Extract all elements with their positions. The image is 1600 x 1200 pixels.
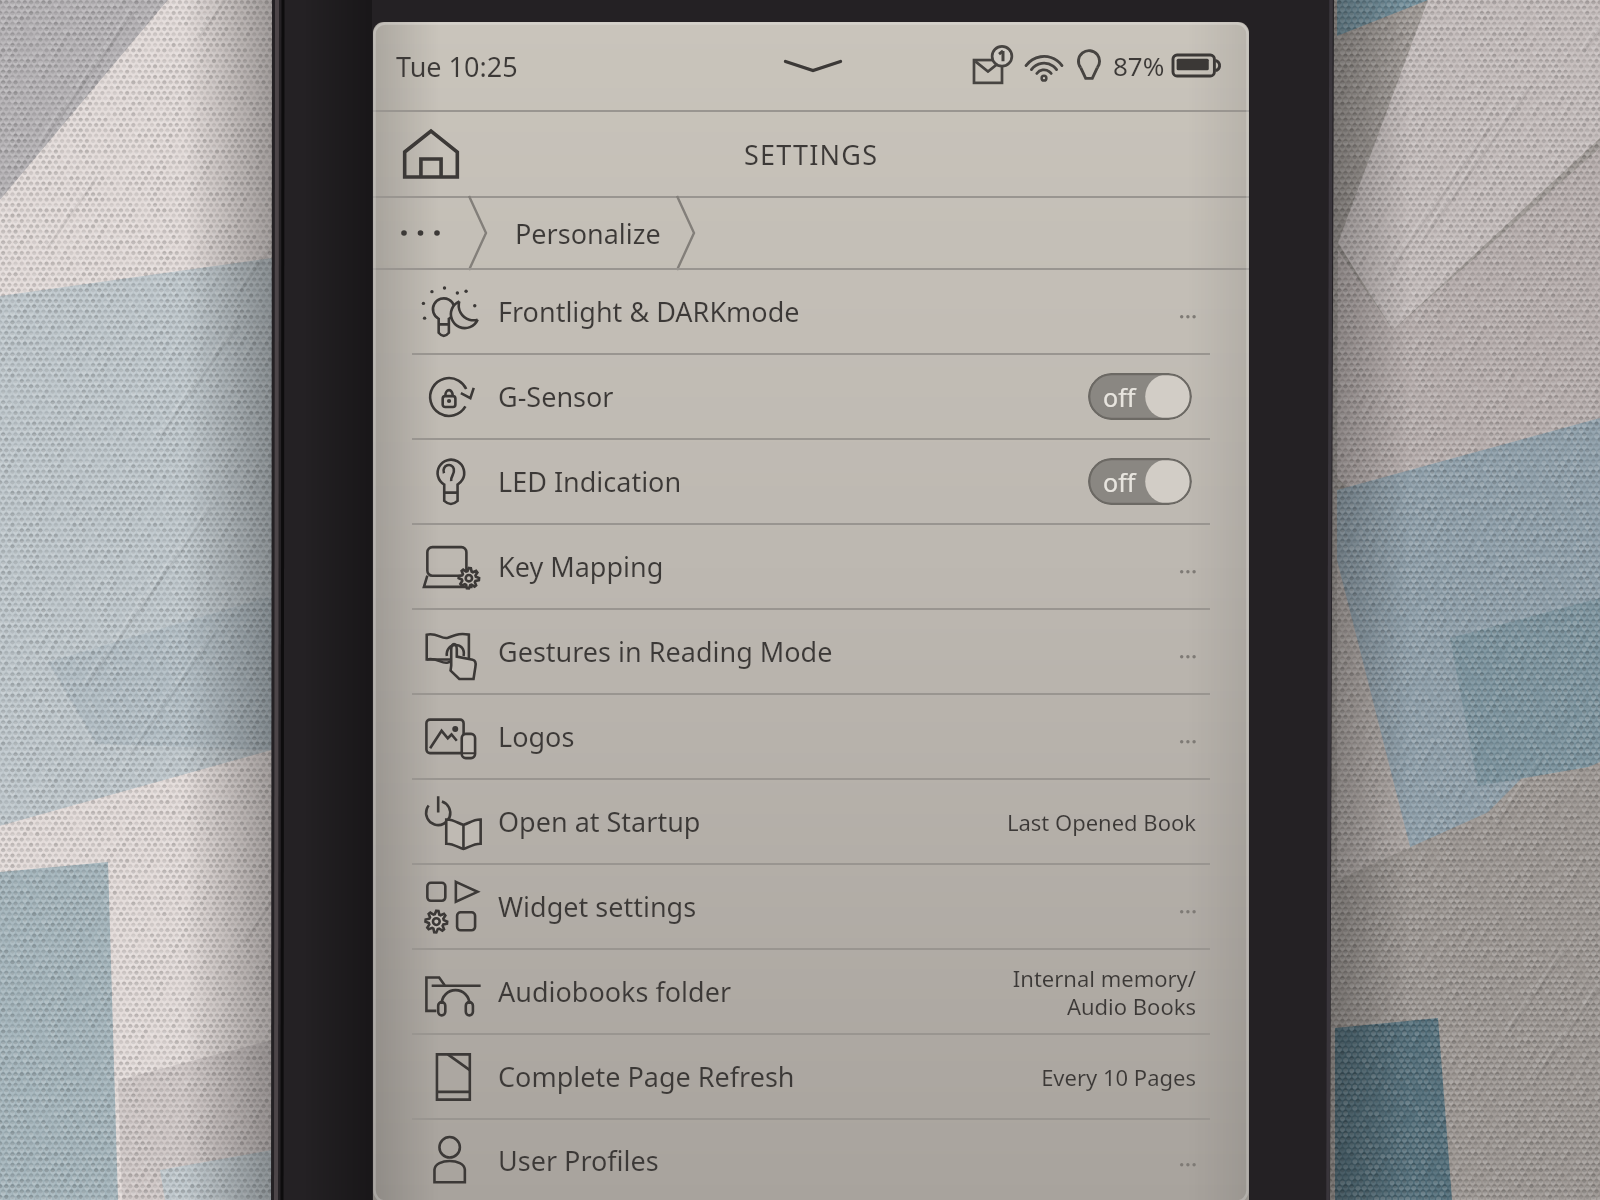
button[interactable]: LED Indication off bbox=[1088, 458, 1192, 505]
staticText: Complete Page Refresh bbox=[498, 1058, 795, 1095]
button[interactable]: Key Mapping bbox=[373, 525, 1249, 608]
staticText: Frontlight & DARKmode bbox=[498, 293, 800, 330]
button[interactable]: Expand notification panel bbox=[770, 44, 856, 88]
button[interactable]: Personalize bbox=[493, 198, 683, 268]
button[interactable]: Status: 1 message, Wi-Fi on, frontlight,… bbox=[968, 43, 1223, 89]
staticText: 87% bbox=[1113, 48, 1165, 83]
staticText: User Profiles bbox=[498, 1142, 659, 1179]
button[interactable]: Widget settings bbox=[373, 865, 1249, 948]
button[interactable]: Open at Startup bbox=[373, 780, 1249, 863]
staticText: Logos bbox=[498, 718, 575, 755]
staticText: Tue 10:25 bbox=[396, 48, 518, 85]
staticText: Internal memory/ Audio Books bbox=[1012, 963, 1196, 1021]
staticText: Personalize bbox=[515, 215, 661, 252]
staticText: off bbox=[1103, 465, 1136, 499]
staticText: Every 10 Pages bbox=[1041, 1062, 1196, 1092]
staticText: SETTINGS bbox=[744, 136, 879, 173]
button[interactable]: Home bbox=[387, 116, 475, 192]
staticText: off bbox=[1103, 380, 1136, 414]
button[interactable]: Logos bbox=[373, 695, 1249, 778]
staticText: Key Mapping bbox=[498, 548, 664, 585]
button[interactable]: Gestures in Reading Mode bbox=[373, 610, 1249, 693]
button[interactable]: Audiobooks folder bbox=[373, 950, 1249, 1033]
staticText: Widget settings bbox=[498, 888, 697, 925]
button[interactable]: G-Sensor off bbox=[1088, 373, 1192, 420]
button[interactable]: LED Indication bbox=[373, 440, 1249, 523]
staticText: G-Sensor bbox=[498, 378, 614, 415]
staticText: Audiobooks folder bbox=[498, 973, 732, 1010]
button[interactable]: Frontlight & DARKmode bbox=[373, 270, 1249, 353]
staticText: Open at Startup bbox=[498, 803, 701, 840]
button[interactable]: Complete Page Refresh bbox=[373, 1035, 1249, 1118]
button[interactable]: User Profiles bbox=[373, 1120, 1249, 1200]
button[interactable]: G-Sensor bbox=[373, 355, 1249, 438]
staticText: LED Indication bbox=[498, 463, 682, 500]
staticText: Last Opened Book bbox=[1006, 807, 1196, 837]
staticText: Gestures in Reading Mode bbox=[498, 633, 833, 670]
